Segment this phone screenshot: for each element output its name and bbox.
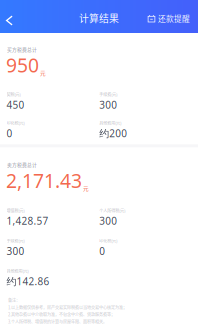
staticText: 契税(元)	[6, 91, 20, 97]
staticText: 2.其他杂费以中介收取为准，不包含中介费、贷款服务费等；	[8, 311, 115, 317]
staticText: 约200	[99, 126, 127, 140]
button[interactable]: 还款提醒	[147, 0, 198, 33]
staticText: 还款提醒	[158, 13, 190, 24]
staticText: 0	[99, 244, 105, 258]
staticText: 其他费用(元)	[99, 120, 121, 126]
staticText: 印花税(元)	[6, 120, 24, 126]
staticText: 3.个人所得税、增值税的计算与房屋年限、面积等相关。	[8, 319, 107, 325]
button[interactable]: Back	[0, 0, 26, 33]
staticText: 手续费(元)	[6, 238, 24, 244]
staticText: 卖方税费总计	[7, 161, 37, 168]
staticText: 买方税费总计	[7, 46, 37, 53]
staticText: 0	[6, 126, 12, 140]
staticText: 450	[6, 98, 24, 112]
staticText: 300	[6, 244, 24, 258]
staticText: 2,171.43	[6, 167, 82, 193]
staticText: 印花税(元)	[99, 238, 117, 244]
staticText: 1,428.57	[6, 214, 48, 228]
staticText: 300	[99, 214, 117, 228]
staticText: 950	[6, 52, 39, 78]
staticText: 元	[40, 69, 46, 77]
staticText: 个人所得税(元)	[99, 208, 125, 214]
staticText: 备注：	[8, 297, 20, 303]
staticText: 计算结果	[79, 11, 119, 25]
staticText: 手续费(元)	[99, 91, 117, 97]
staticText: 元	[83, 184, 89, 192]
staticText: 约142.86	[6, 274, 49, 288]
staticText: 1.以上数据仅供参考，房产交易实际税费以当地交易中心核定为准；	[8, 304, 127, 310]
staticText: 增值税(元)	[6, 208, 24, 214]
staticText: 300	[99, 98, 117, 112]
staticText: 其他费用(元)	[6, 268, 28, 274]
